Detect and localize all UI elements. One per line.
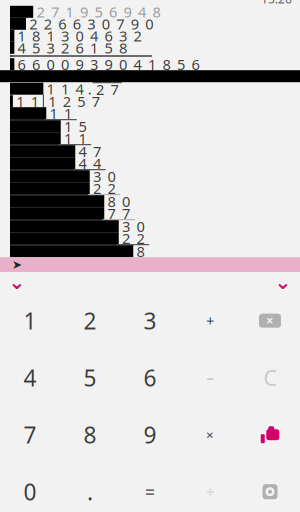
staticText: 7	[107, 203, 115, 223]
button[interactable]: 7	[0, 406, 60, 463]
staticText: 5	[105, 38, 113, 58]
staticText: 3	[61, 26, 69, 46]
button[interactable]: Settings	[240, 463, 300, 512]
staticText: 5	[94, 2, 102, 22]
staticText: 2	[122, 228, 130, 248]
staticText: 2	[96, 79, 104, 99]
staticText: 3	[93, 166, 101, 186]
staticText: 8	[83, 420, 96, 450]
staticText: 5	[32, 38, 40, 58]
staticText: 3	[90, 54, 98, 74]
staticText: 9	[123, 2, 131, 22]
staticText: 7	[110, 79, 118, 99]
button[interactable]: 6	[120, 349, 180, 406]
staticText: 6	[76, 38, 84, 58]
staticText: .	[87, 477, 93, 507]
staticText: 0	[107, 166, 115, 186]
staticText: ×	[266, 312, 274, 329]
staticText: 0	[119, 54, 127, 74]
staticText: 15:26	[261, 0, 292, 7]
button[interactable]: 1	[0, 292, 60, 349]
button[interactable]: 5	[60, 349, 120, 406]
staticText: 6	[109, 2, 117, 22]
staticText: 7	[92, 91, 100, 111]
button[interactable]: Previous problem	[0, 273, 34, 291]
staticText: 7	[93, 141, 101, 161]
staticText: –	[206, 368, 213, 387]
staticText: 7	[122, 203, 130, 223]
staticText: 4	[76, 79, 84, 98]
staticText: 4	[78, 141, 86, 161]
staticText: 1	[64, 128, 72, 148]
staticText: 0	[122, 191, 130, 211]
staticText: 3	[143, 306, 156, 336]
staticText: 9	[80, 2, 88, 22]
staticText: 6	[105, 26, 113, 46]
button[interactable]: 3	[120, 292, 180, 349]
button[interactable]: 9	[120, 406, 180, 463]
button[interactable]: Next problem	[266, 273, 300, 291]
staticText: 1	[90, 38, 98, 58]
staticText: 8	[119, 38, 127, 58]
staticText: 1	[16, 91, 24, 111]
staticText: 0	[23, 477, 36, 507]
staticText: 1	[47, 79, 55, 98]
staticText: 3	[87, 14, 95, 34]
staticText: 7	[116, 14, 124, 34]
staticText: 8	[136, 241, 144, 261]
staticText: 2	[134, 26, 142, 46]
staticText: 1	[61, 79, 69, 98]
staticText: =	[145, 480, 155, 503]
staticText: 8	[152, 2, 160, 22]
staticText: 0	[145, 14, 153, 34]
button[interactable]: Multiply	[180, 406, 240, 463]
staticText: 4	[93, 153, 101, 173]
staticText: 1	[23, 306, 36, 336]
staticText: 3	[47, 38, 55, 58]
staticText: 9	[76, 54, 84, 74]
staticText: 0	[136, 216, 144, 236]
staticText: 4	[134, 54, 142, 74]
staticText: 9	[105, 54, 113, 74]
staticText: 2	[107, 178, 115, 198]
button[interactable]: 2	[60, 292, 120, 349]
button[interactable]: 4	[0, 349, 60, 406]
button[interactable]: 0	[0, 463, 60, 512]
staticText: 6	[18, 54, 26, 74]
button[interactable]: Check answer	[240, 406, 300, 463]
staticText: 4	[18, 38, 26, 58]
staticText: 9	[143, 420, 156, 450]
staticText: 7	[23, 420, 36, 450]
button[interactable]: Clear	[240, 349, 300, 406]
button[interactable]: Equals	[120, 463, 180, 512]
staticText: 1	[49, 103, 57, 123]
staticText: ×	[206, 426, 214, 443]
staticText: 6	[58, 14, 66, 34]
staticText: 1	[65, 2, 73, 22]
staticText: 7	[51, 2, 59, 22]
staticText: 2	[44, 14, 52, 34]
staticText: 1	[78, 128, 86, 148]
staticText: 6	[32, 54, 40, 74]
staticText: 1	[64, 103, 72, 123]
staticText: ➤	[12, 258, 22, 271]
staticText: 1	[31, 91, 39, 111]
button[interactable]: Decimal point	[60, 463, 120, 512]
staticText: 8	[163, 54, 171, 74]
staticText: 0	[76, 26, 84, 46]
staticText: 2	[93, 178, 101, 198]
staticText: 2	[83, 306, 96, 336]
staticText: 6	[192, 54, 200, 74]
staticText: 9	[131, 14, 139, 34]
staticText: 5	[78, 116, 86, 136]
staticText: 1	[48, 91, 56, 111]
staticText: 5	[177, 54, 185, 74]
staticText: 6	[73, 14, 81, 34]
staticText: 3	[119, 26, 127, 46]
button[interactable]: 8	[60, 406, 120, 463]
staticText: C	[263, 363, 276, 392]
button[interactable]: Backspace	[240, 292, 300, 349]
button[interactable]: Plus	[180, 292, 240, 349]
